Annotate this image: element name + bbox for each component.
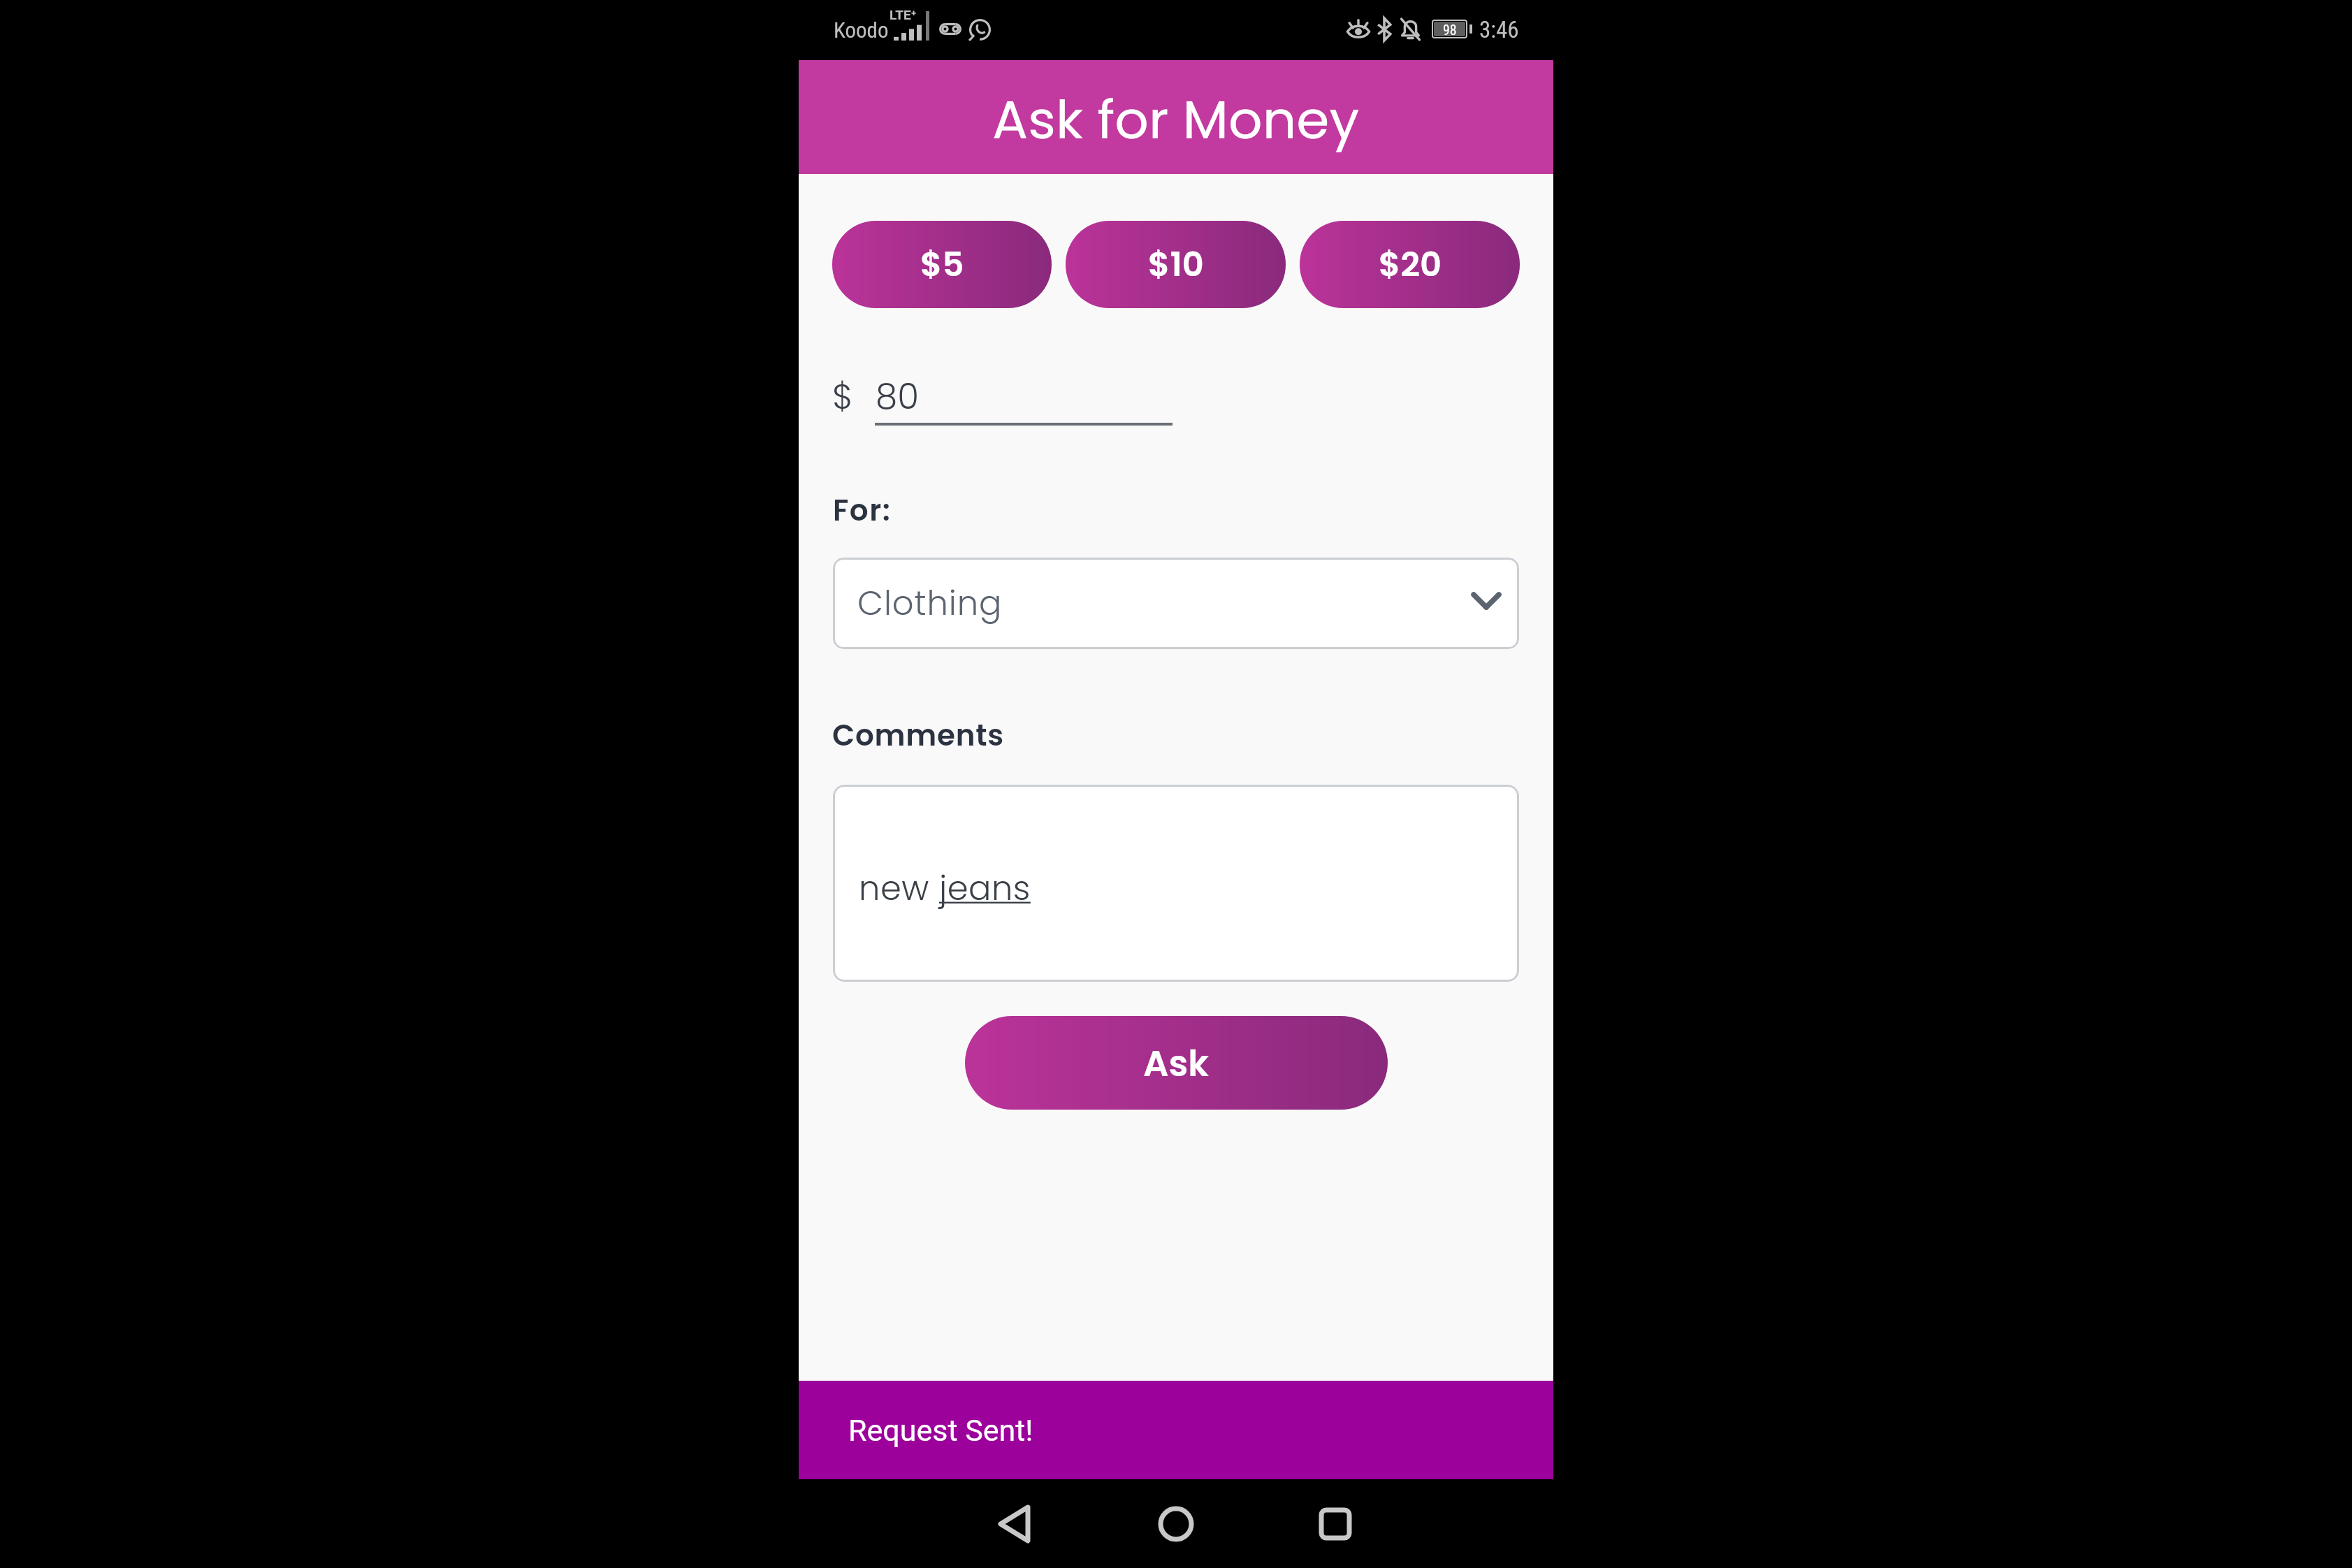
staticText: $10 bbox=[1148, 241, 1204, 288]
button[interactable]: Ask bbox=[965, 1016, 1388, 1110]
staticText: Comments bbox=[832, 715, 1004, 756]
button[interactable]: Back bbox=[980, 1490, 1047, 1558]
staticText: Request Sent! bbox=[848, 1413, 1033, 1448]
staticText: Clothing bbox=[857, 580, 1003, 627]
button[interactable]: Request Sent! bbox=[799, 1381, 1553, 1479]
button[interactable]: Clothing bbox=[833, 558, 1519, 649]
staticText: jeans bbox=[939, 865, 1031, 912]
staticText: 98 bbox=[1443, 22, 1457, 36]
button[interactable]: new bbox=[833, 785, 1519, 982]
button[interactable]: Home bbox=[1142, 1490, 1210, 1558]
staticText: For: bbox=[833, 490, 892, 531]
staticText: Ask bbox=[1143, 1038, 1210, 1088]
staticText: Koodo bbox=[834, 17, 889, 43]
button[interactable]: Recents bbox=[1302, 1490, 1369, 1558]
button[interactable]: $5 bbox=[832, 221, 1052, 308]
staticText: $ bbox=[832, 372, 853, 421]
button[interactable]: $10 bbox=[1066, 221, 1286, 308]
staticText: 80 bbox=[876, 372, 919, 421]
staticText: new bbox=[859, 865, 939, 912]
staticText: $5 bbox=[920, 241, 964, 288]
staticText: $20 bbox=[1379, 241, 1442, 288]
staticText: LTE⁺ bbox=[890, 7, 917, 22]
button[interactable]: $20 bbox=[1300, 221, 1520, 308]
staticText: Ask for Money bbox=[992, 82, 1360, 157]
staticText: 3:46 bbox=[1479, 16, 1519, 43]
